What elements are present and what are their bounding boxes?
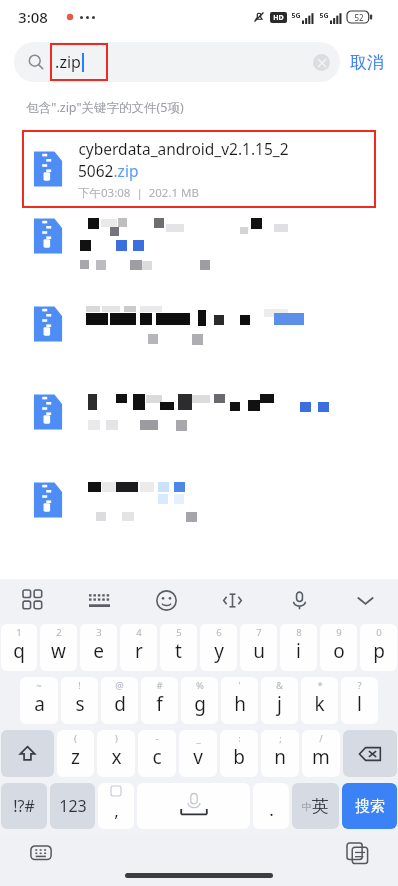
staticText: 0 [376, 626, 382, 639]
staticText: p [373, 638, 385, 664]
staticText: 2 [56, 626, 62, 639]
button[interactable]: ) [97, 730, 135, 777]
button[interactable]: ' [221, 677, 258, 724]
button[interactable] [0, 296, 398, 384]
staticText: n [274, 744, 286, 770]
button[interactable]: 3 [80, 624, 117, 671]
button[interactable]: Hide keyboard [348, 583, 382, 617]
staticText: q [13, 638, 25, 664]
button[interactable]: 0 [360, 624, 397, 671]
button[interactable]: Emoji [149, 583, 183, 617]
staticText: l [357, 691, 362, 717]
staticText: ' [238, 679, 241, 692]
button[interactable]: - [138, 730, 176, 777]
staticText: 123 [59, 795, 87, 817]
staticText: 3 [96, 626, 102, 639]
staticText: ; [279, 732, 282, 745]
staticText: f [156, 691, 163, 717]
button[interactable]: 4 [120, 624, 157, 671]
staticText: % [196, 679, 204, 692]
button[interactable]: 7 [240, 624, 277, 671]
staticText: 3:08 [18, 7, 48, 27]
staticText: y [214, 638, 224, 664]
staticText: 52 [354, 12, 364, 23]
staticText: 7 [256, 626, 262, 639]
button[interactable]: ( [57, 730, 94, 777]
button[interactable]: Backspace [343, 730, 397, 777]
button[interactable]: * [301, 677, 338, 724]
button[interactable]: !?# [1, 783, 47, 829]
button[interactable]: Recents [344, 840, 370, 866]
button[interactable]: 5 [160, 624, 197, 671]
staticText: , [114, 799, 119, 822]
staticText: . [269, 798, 274, 821]
staticText: _ [196, 732, 201, 745]
button[interactable]: .zip [14, 42, 340, 82]
button[interactable]: 8 [280, 624, 317, 671]
button[interactable]: , [98, 783, 134, 829]
staticText: ! [78, 679, 81, 692]
staticText: 6 [216, 626, 222, 639]
staticText: 取消 [350, 52, 384, 73]
button[interactable] [0, 472, 398, 530]
staticText: HD [273, 13, 284, 23]
button[interactable]: # [141, 677, 178, 724]
button[interactable]: / [302, 730, 340, 777]
button[interactable]: 搜索 [342, 783, 397, 829]
staticText: / [319, 732, 323, 745]
button[interactable]: 中 [292, 783, 339, 829]
staticText: k [314, 691, 325, 717]
staticText: @ [115, 679, 124, 692]
staticText: - [155, 732, 159, 745]
button[interactable]: @ [101, 677, 138, 724]
button[interactable]: 2 [40, 624, 77, 671]
button[interactable]: Shift [1, 730, 54, 777]
button[interactable]: : [220, 730, 258, 777]
button[interactable]: 123 [50, 783, 95, 829]
button[interactable]: cyberdata_android_v2.1.15_2 [22, 130, 376, 208]
button[interactable]: % [181, 677, 218, 724]
staticText: 包含".zip"关键字的文件(5项) [26, 99, 184, 116]
staticText: !?# [13, 795, 35, 817]
staticText: a [34, 691, 45, 717]
button[interactable]: Cursor [215, 583, 249, 617]
staticText: t [175, 638, 182, 664]
staticText: 5062.zip [78, 160, 139, 181]
button[interactable]: Apps [16, 583, 50, 617]
staticText: 搜索 [355, 797, 385, 816]
button[interactable]: Clear [313, 54, 330, 71]
staticText: ? [357, 679, 362, 692]
staticText: m [312, 744, 330, 770]
button[interactable]: 1 [1, 624, 37, 671]
button[interactable]: ? [341, 677, 378, 724]
button[interactable]: Voice input [282, 583, 316, 617]
staticText: c [152, 744, 162, 770]
staticText: 1 [16, 626, 22, 639]
button[interactable]: ! [61, 677, 98, 724]
staticText: j [277, 691, 282, 717]
button[interactable]: 6 [200, 624, 237, 671]
button[interactable]: 9 [320, 624, 357, 671]
staticText: 8 [296, 626, 302, 639]
staticText: h [234, 691, 246, 717]
staticText: & [276, 679, 283, 692]
button[interactable]: Keyboard [28, 840, 54, 866]
staticText: 5G [291, 11, 301, 21]
staticText: s [75, 691, 85, 717]
button[interactable]: _ [179, 730, 217, 777]
staticText: ~ [36, 679, 42, 692]
button[interactable]: . [253, 783, 289, 829]
button[interactable] [0, 384, 398, 472]
button[interactable]: ~ [20, 677, 58, 724]
button[interactable]: & [261, 677, 298, 724]
staticText: 4 [136, 626, 142, 639]
staticText: : [238, 732, 241, 745]
staticText: # [156, 679, 163, 692]
button[interactable] [0, 208, 398, 296]
staticText: z [71, 744, 80, 770]
staticText: 英 [312, 796, 329, 817]
button[interactable]: Keyboard layout [82, 583, 116, 617]
button[interactable]: ; [261, 730, 299, 777]
button[interactable]: Space [137, 783, 250, 829]
button[interactable]: 取消 [350, 52, 384, 73]
